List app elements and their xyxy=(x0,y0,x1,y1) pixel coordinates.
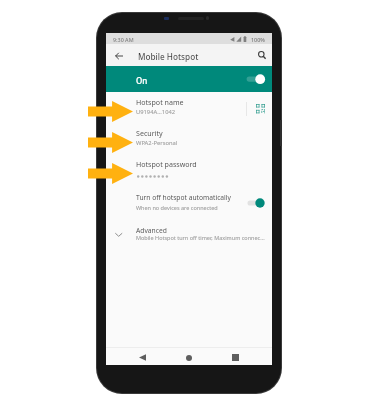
staticText: Hotspot name xyxy=(136,97,184,107)
staticText: Advanced xyxy=(136,226,167,235)
button[interactable]: On xyxy=(106,66,272,92)
button[interactable]: Back xyxy=(126,349,158,366)
button[interactable]: Recent apps xyxy=(219,349,251,366)
button[interactable]: Home xyxy=(173,349,205,366)
button[interactable]: Hotspot password xyxy=(106,162,272,192)
staticText: Turn off hotspot automatically xyxy=(136,193,231,202)
staticText: Mobile Hotspot xyxy=(138,51,199,62)
button[interactable]: Navigate up xyxy=(108,44,130,67)
staticText: Mobile Hotspot turn off timer, Maximum c… xyxy=(136,234,265,241)
button[interactable]: Hotspot name xyxy=(106,100,272,130)
staticText: Security xyxy=(136,128,163,138)
staticText: U9194A...1042 xyxy=(136,108,176,116)
button[interactable]: Turn off hotspot automatically xyxy=(106,192,272,217)
staticText: On xyxy=(136,75,148,86)
staticText: WPA2-Personal xyxy=(136,139,178,147)
button[interactable]: Share hotspot QR code xyxy=(249,98,271,120)
button[interactable]: Security xyxy=(106,131,272,161)
staticText: 100% xyxy=(251,36,265,43)
staticText: When no devices are connected xyxy=(136,204,218,211)
staticText: Hotspot password xyxy=(136,159,197,169)
staticText: 9:30 AM xyxy=(113,36,134,43)
button[interactable]: Advanced xyxy=(106,226,272,248)
button[interactable]: Search xyxy=(252,44,272,67)
